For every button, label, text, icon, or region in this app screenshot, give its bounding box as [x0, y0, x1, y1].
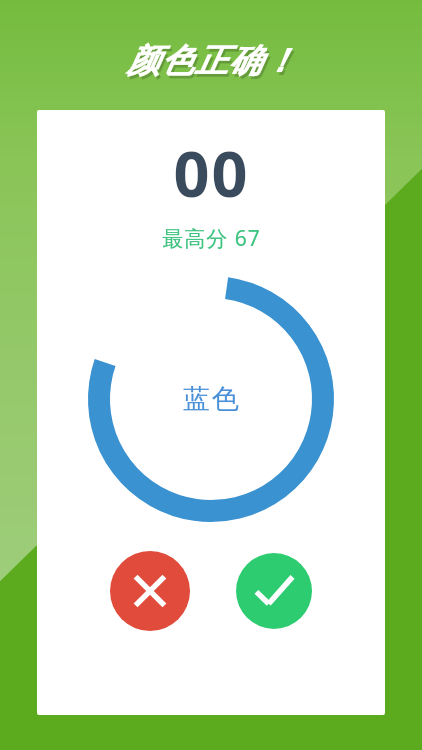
- staticText: 蓝色: [182, 382, 240, 416]
- staticText: 00: [173, 130, 250, 216]
- button[interactable]: Wrong answer: [110, 551, 190, 631]
- staticText: 颜色正确！: [126, 40, 296, 82]
- staticText: 最高分 67: [162, 224, 261, 253]
- button[interactable]: Correct answer: [236, 553, 312, 629]
- staticText: 颜色正确！: [128, 43, 298, 85]
